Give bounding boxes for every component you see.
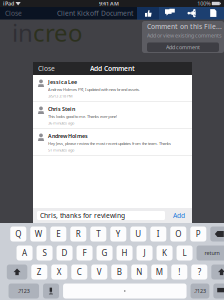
staticText: Z [37, 267, 42, 277]
button[interactable]: U [130, 226, 146, 241]
staticText: 36 minutes ago [48, 120, 74, 126]
staticText: X [57, 267, 62, 277]
staticText: M [156, 267, 163, 277]
staticText: Hey Jess, please review the most recent … [48, 141, 171, 146]
staticText: iPad [3, 0, 14, 7]
button[interactable]: Dictate [43, 283, 59, 298]
staticText: Chris, thanks for reviewing [40, 211, 125, 220]
staticText: A [22, 248, 27, 258]
button[interactable]: ? [191, 264, 207, 279]
staticText: Close [5, 9, 22, 18]
button[interactable]: Hide Keyboard [213, 283, 224, 298]
staticText: J [144, 248, 146, 258]
staticText: Y [116, 229, 121, 239]
button[interactable]: F [76, 245, 92, 260]
staticText: Add comment [166, 44, 200, 51]
staticText: Add [173, 211, 185, 220]
button[interactable]: G [96, 245, 112, 260]
button[interactable]: Document [203, 7, 224, 19]
button[interactable]: W [30, 226, 46, 241]
button[interactable]: Comment [159, 7, 181, 19]
staticText: W [35, 229, 42, 239]
button[interactable]: D [56, 245, 72, 260]
staticText: Close [38, 64, 55, 73]
button[interactable]: Return [197, 245, 224, 260]
button[interactable]: B [111, 264, 127, 279]
button[interactable]: K [157, 245, 173, 260]
button[interactable]: A [17, 245, 33, 260]
staticText: Q [15, 229, 21, 239]
staticText: 51 minutes ago [48, 147, 74, 153]
button[interactable]: ! [171, 264, 187, 279]
staticText: Add or view existing comments [147, 32, 222, 39]
button[interactable]: Numbers [9, 283, 39, 298]
button[interactable]: P [190, 226, 206, 241]
staticText: Comment on this File... [147, 22, 222, 31]
staticText: I [157, 229, 160, 239]
button[interactable]: Shift [7, 264, 27, 279]
staticText: L [183, 248, 187, 258]
button[interactable]: J [137, 245, 153, 260]
staticText: P [196, 229, 201, 239]
button[interactable]: Add comment [147, 42, 219, 52]
button[interactable]: Q [10, 226, 26, 241]
button[interactable]: H [116, 245, 132, 260]
staticText: 100% [197, 0, 210, 7]
button[interactable]: Numbers [191, 283, 209, 298]
button[interactable]: Share [181, 7, 203, 19]
staticText: K [162, 248, 167, 258]
staticText: Client Kickoff Document [57, 9, 133, 18]
staticText: Add Comment [90, 64, 135, 73]
button[interactable]: Y [110, 226, 126, 241]
staticText: G [101, 248, 107, 258]
staticText: F [82, 248, 86, 258]
button[interactable]: Close [33, 62, 60, 75]
staticText: U [135, 229, 141, 239]
staticText: Andrew Holmes FYI, I updated with new br… [48, 87, 140, 92]
staticText: ! [178, 267, 180, 277]
staticText: S [42, 248, 46, 258]
button[interactable]: Backspace [210, 226, 224, 241]
staticText: 3/5/13 3:18 PM [48, 93, 73, 99]
staticText: N [136, 267, 142, 277]
staticText: This looks good to me. Thanks everyone! [48, 114, 117, 119]
staticText: Jessica Lee [48, 78, 77, 86]
button[interactable]: X [51, 264, 67, 279]
staticText: O [175, 229, 181, 239]
button[interactable]: E [50, 226, 66, 241]
button[interactable]: Like [137, 7, 159, 19]
button[interactable]: Close [0, 7, 27, 19]
button[interactable]: R [70, 226, 86, 241]
button[interactable]: O [170, 226, 186, 241]
button[interactable]: M [151, 264, 167, 279]
staticText: in [12, 17, 33, 48]
button[interactable]: V [91, 264, 107, 279]
button[interactable]: S [36, 245, 52, 260]
button[interactable]: I [150, 226, 166, 241]
button[interactable]: L [177, 245, 193, 260]
staticText: 9:41 AM [99, 0, 119, 7]
button[interactable]: T [90, 226, 106, 241]
button[interactable]: C [71, 264, 87, 279]
button[interactable]: Shift [211, 264, 224, 279]
button[interactable]: Space [63, 283, 186, 298]
staticText: .?123 [18, 287, 30, 295]
button[interactable]: Add [169, 210, 189, 220]
staticText: R [76, 229, 81, 239]
staticText: return [205, 249, 220, 257]
staticText: E [56, 229, 60, 239]
staticText: H [121, 248, 127, 258]
staticText: B [117, 267, 122, 277]
staticText: ? [198, 267, 201, 277]
staticText: Andrew Holmes [48, 132, 88, 140]
staticText: .?123 [194, 287, 206, 295]
staticText: creo [33, 17, 83, 48]
staticText: T [96, 229, 100, 239]
button[interactable]: Z [31, 264, 47, 279]
staticText: D [61, 248, 67, 258]
staticText: V [97, 267, 102, 277]
staticText: Chris Stein [48, 105, 75, 113]
staticText: C [77, 267, 82, 277]
button[interactable]: N [131, 264, 147, 279]
